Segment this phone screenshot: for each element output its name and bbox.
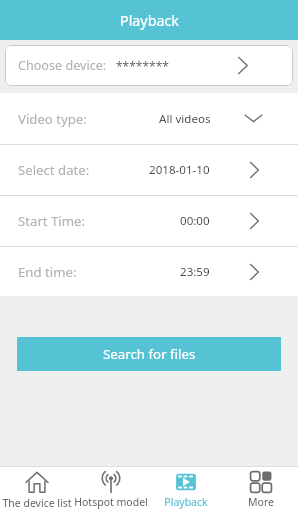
button[interactable]: More (223, 467, 298, 512)
button[interactable]: End time: (0, 247, 298, 296)
staticText: Select date: (18, 161, 90, 179)
button[interactable]: The device list (0, 467, 74, 512)
staticText: All videos (159, 111, 211, 127)
staticText: 2018-01-10 (149, 162, 210, 178)
staticText: Video type: (18, 110, 87, 128)
staticText: End time: (18, 263, 77, 281)
button[interactable]: Hotspot model (74, 467, 148, 512)
staticText: Start Time: (18, 212, 86, 230)
button[interactable]: Video type: (0, 93, 298, 144)
staticText: Choose device: (18, 57, 107, 74)
button[interactable]: Start Time: (0, 196, 298, 246)
staticText: ******** (116, 58, 169, 74)
button[interactable]: Select date: (0, 145, 298, 195)
button[interactable]: Search for files (17, 337, 281, 371)
staticText: Playback (120, 11, 179, 30)
staticText: More (248, 495, 274, 509)
staticText: Hotspot model (74, 495, 148, 509)
button[interactable]: Choose device: (5, 45, 293, 86)
staticText: 23:59 (180, 264, 210, 280)
staticText: Playback (164, 495, 208, 509)
staticText: 00:00 (180, 213, 210, 229)
button[interactable]: Playback (148, 467, 223, 512)
staticText: Search for files (103, 345, 196, 363)
staticText: The device list (2, 496, 72, 510)
